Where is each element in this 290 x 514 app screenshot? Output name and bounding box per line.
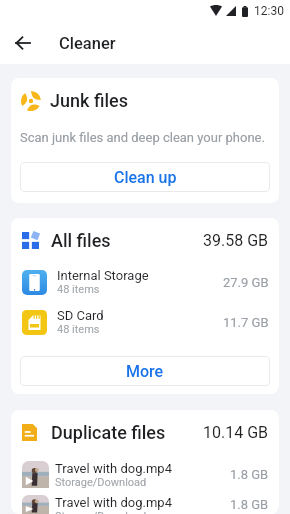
staticText: Travel with dog.mp4 — [55, 461, 172, 476]
button[interactable]: Back — [0, 22, 45, 64]
staticText: Cleaner — [59, 34, 116, 53]
staticText: Internal Storage — [57, 268, 149, 283]
staticText: More — [126, 362, 164, 381]
staticText: 27.9 GB — [223, 275, 269, 290]
staticText: 48 items — [57, 283, 100, 296]
staticText: 11.7 GB — [223, 315, 269, 330]
staticText: Storage/Download — [55, 476, 147, 489]
staticText: Clean up — [114, 168, 177, 187]
button[interactable]: Travel with dog.mp4 — [11, 495, 279, 514]
staticText: Junk files — [50, 90, 128, 111]
staticText: Scan junk files and deep clean your phon… — [20, 130, 265, 145]
staticText: Storage/Download — [55, 510, 147, 514]
staticText: 39.58 GB — [203, 231, 269, 250]
staticText: Travel with dog.mp4 — [55, 495, 172, 510]
staticText: 1.8 GB — [230, 467, 269, 482]
staticText: All files — [51, 230, 111, 251]
staticText: SD Card — [57, 308, 104, 323]
button[interactable]: SD Card — [11, 302, 279, 342]
staticText: 12:30 — [254, 4, 284, 18]
staticText: 1.8 GB — [230, 497, 269, 512]
button[interactable]: Travel with dog.mp4 — [11, 454, 279, 495]
button[interactable]: More — [20, 356, 270, 386]
staticText: 10.14 GB — [203, 423, 269, 442]
staticText: 48 items — [57, 323, 100, 336]
staticText: Duplicate files — [51, 422, 166, 443]
button[interactable]: Internal Storage — [11, 262, 279, 302]
button[interactable]: Clean up — [20, 162, 270, 192]
